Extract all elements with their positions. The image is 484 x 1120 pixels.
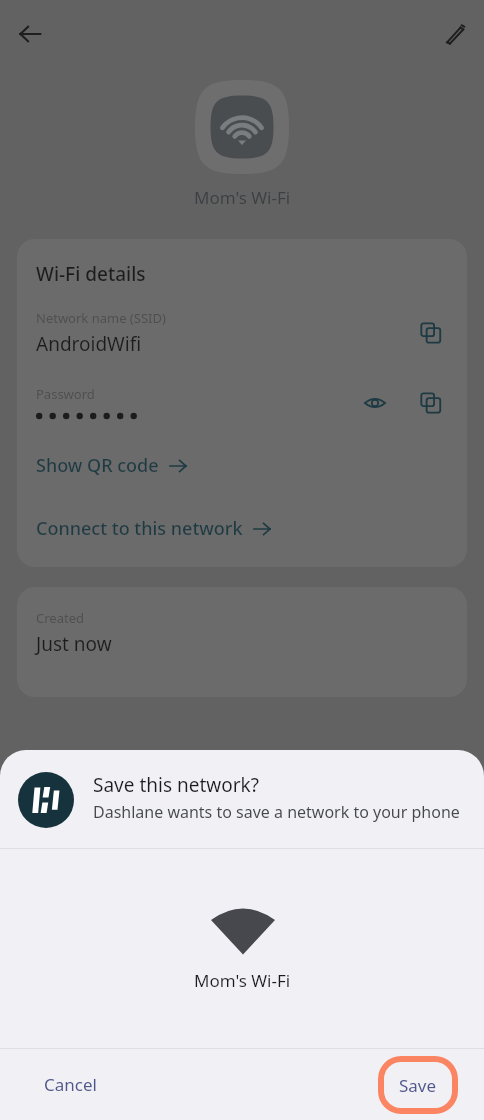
staticText: Created (36, 609, 84, 627)
button[interactable]: Save (385, 1065, 451, 1106)
staticText: Show QR code (36, 453, 159, 478)
staticText: Password (36, 385, 95, 403)
button[interactable]: Connect to this network (36, 516, 272, 541)
staticText: Cancel (44, 1073, 97, 1096)
button[interactable]: Edit (434, 14, 474, 54)
button[interactable]: Copy network name (411, 313, 451, 353)
staticText: AndroidWifi (36, 331, 142, 357)
button[interactable]: Cancel (28, 1064, 113, 1105)
button[interactable]: Show QR code (36, 453, 188, 478)
button[interactable]: Back (10, 14, 50, 54)
staticText: Network name (SSID) (36, 309, 166, 327)
staticText: Mom's Wi-Fi (194, 186, 291, 209)
staticText: Mom's Wi-Fi (194, 969, 291, 992)
button[interactable]: Show password (355, 383, 395, 423)
button[interactable]: Copy password (411, 383, 451, 423)
staticText: Dashlane wants to save a network to your… (93, 801, 460, 823)
staticText: Wi-Fi details (36, 261, 146, 287)
staticText: Save (399, 1074, 437, 1097)
staticText: Just now (36, 631, 112, 657)
staticText: Connect to this network (36, 516, 243, 541)
staticText: Save this network? (93, 772, 259, 798)
